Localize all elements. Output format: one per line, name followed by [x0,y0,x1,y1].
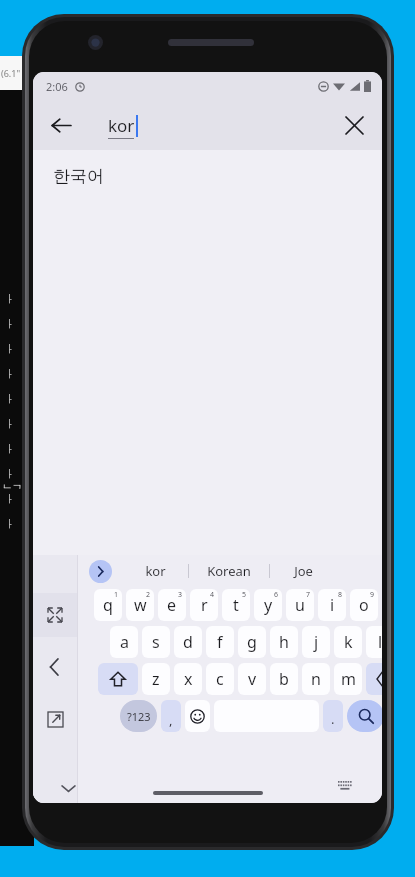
button[interactable]: w [126,589,154,621]
staticText: ㅏ [4,417,15,431]
button[interactable]: e [158,589,186,621]
staticText: 7 [306,590,311,600]
staticText: 6 [274,590,279,600]
button[interactable]: j [302,626,330,658]
button[interactable]: Backspace [366,663,382,695]
staticText: o [359,594,369,616]
staticText: a [120,631,129,653]
staticText: 2 [146,590,151,600]
staticText: kor [145,562,166,580]
staticText: ᄂᄀ [2,482,23,495]
button[interactable]: x [174,663,202,695]
button[interactable]: g [238,626,266,658]
staticText: 1 [114,590,119,600]
button[interactable]: Change keyboard [330,773,360,803]
staticText: ㅏ [4,342,15,356]
staticText: n [311,668,321,690]
staticText: 3 [178,590,183,600]
button[interactable]: r [190,589,218,621]
staticText: Joe [294,562,313,580]
button[interactable]: Resize keyboard [33,593,77,637]
staticText: 4 [210,590,215,600]
staticText: ㅏ [4,517,15,531]
staticText: r [201,594,208,616]
staticText: m [341,668,356,690]
staticText: 8 [338,590,343,600]
staticText: ㅏ [4,292,15,306]
button[interactable]: h [270,626,298,658]
button[interactable]: Shift [98,663,138,695]
button[interactable]: v [238,663,266,695]
staticText: f [217,631,223,653]
button[interactable]: f [206,626,234,658]
button[interactable]: kor [122,555,188,587]
button[interactable]: n [302,663,330,695]
button[interactable]: Previous [33,645,77,689]
button[interactable]: 한국어 [33,150,382,202]
staticText: z [152,668,160,690]
staticText: 2:06 [46,79,68,94]
staticText: h [279,631,289,653]
staticText: x [184,668,193,690]
staticText: s [152,631,160,653]
button[interactable]: t [222,589,250,621]
staticText: k [344,631,353,653]
staticText: . [331,710,335,728]
button[interactable]: ?123 [120,700,157,732]
button[interactable]: b [270,663,298,695]
staticText: ㅏ [4,442,15,456]
button[interactable]: d [174,626,202,658]
staticText: ㅏ [4,367,15,381]
staticText: e [167,594,177,616]
staticText: 5 [242,590,247,600]
staticText: g [247,631,257,653]
button[interactable]: i [318,589,346,621]
staticText: Korean [207,562,251,580]
button[interactable]: Clear search [334,105,374,145]
staticText: j [314,631,319,653]
button[interactable]: o [350,589,378,621]
staticText: t [233,594,239,616]
button[interactable]: Back [41,105,81,145]
staticText: 9 [370,590,375,600]
button[interactable]: c [206,663,234,695]
button[interactable]: , [161,700,181,732]
staticText: ㅏ [4,392,15,406]
staticText: c [216,668,224,690]
button[interactable]: Search [347,700,382,732]
button[interactable]: kor [108,114,138,137]
staticText: ㅏ [4,492,15,506]
button[interactable]: k [334,626,362,658]
staticText: l [378,631,382,653]
button[interactable]: z [142,663,170,695]
button[interactable]: Emoji [185,700,210,732]
staticText: ㅏ [4,467,15,481]
staticText: i [330,594,335,616]
button[interactable]: m [334,663,362,695]
button[interactable]: q [94,589,122,621]
button[interactable]: Hide keyboard [53,773,83,803]
staticText: w [134,594,147,616]
staticText: 한국어 [53,166,104,187]
button[interactable]: Korean [189,555,269,587]
staticText: q [103,594,113,616]
staticText: d [183,631,193,653]
button[interactable]: . [323,700,343,732]
button[interactable]: Open in new window [33,697,77,741]
button[interactable]: s [142,626,170,658]
staticText: u [295,594,305,616]
staticText: (6.1" [1,67,21,79]
staticText: , [169,711,173,729]
button[interactable]: a [110,626,138,658]
staticText: y [264,594,273,616]
staticText: b [279,668,289,690]
staticText: kor [108,114,135,137]
button[interactable]: Joe [270,555,337,587]
button[interactable]: l [366,626,382,658]
button[interactable]: u [286,589,314,621]
button[interactable]: y [254,589,282,621]
button[interactable]: More suggestions [89,560,112,583]
staticText: ㅏ [4,317,15,331]
staticText: ?123 [127,709,151,724]
